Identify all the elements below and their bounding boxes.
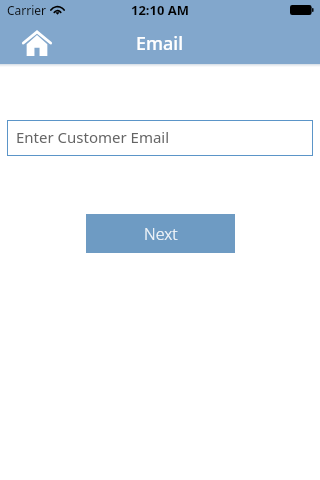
button[interactable]: Enter Customer Email [7,120,313,156]
staticText: Email [136,31,184,56]
staticText: 12:10 AM [131,1,190,19]
staticText: Carrier [7,2,47,18]
button[interactable]: Home [19,27,55,59]
staticText: Next [144,223,178,245]
button[interactable]: Next [86,214,235,253]
staticText: Enter Customer Email [16,127,170,147]
